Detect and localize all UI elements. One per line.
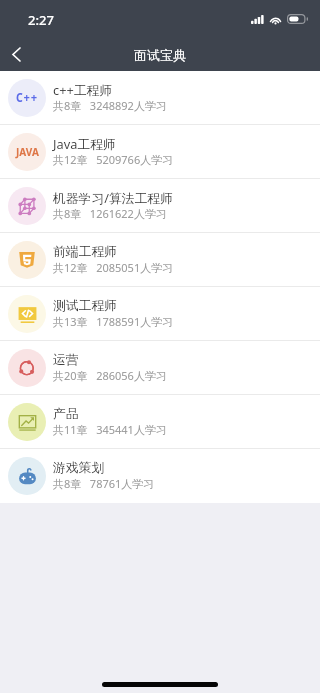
- staticText: 共13章 1788591人学习: [53, 314, 174, 329]
- staticText: 共12章 5209766人学习: [53, 152, 174, 167]
- button[interactable]: 前端工程师: [0, 233, 320, 287]
- staticText: 产品: [53, 406, 79, 422]
- staticText: 游戏策划: [53, 460, 105, 476]
- staticText: 机器学习/算法工程师: [53, 189, 173, 206]
- button[interactable]: 测试工程师: [0, 287, 320, 341]
- staticText: C++: [16, 90, 38, 106]
- staticText: 共8章 1261622人学习: [53, 206, 167, 221]
- button[interactable]: 运营: [0, 341, 320, 395]
- staticText: 运营: [53, 352, 79, 368]
- staticText: JAVA: [16, 145, 39, 159]
- staticText: 前端工程师: [53, 244, 117, 260]
- staticText: Java工程师: [53, 135, 116, 152]
- button[interactable]: 产品: [0, 395, 320, 449]
- staticText: 2:27: [28, 11, 54, 29]
- staticText: 共11章 345441人学习: [53, 422, 167, 437]
- button[interactable]: C++: [0, 71, 320, 125]
- button[interactable]: JAVA: [0, 125, 320, 179]
- staticText: c++工程师: [53, 81, 113, 98]
- staticText: 共12章 2085051人学习: [53, 260, 174, 275]
- staticText: 测试工程师: [53, 298, 117, 314]
- button[interactable]: 机器学习/算法工程师: [0, 179, 320, 233]
- staticText: 共8章 78761人学习: [53, 476, 155, 491]
- button[interactable]: Back: [0, 38, 32, 71]
- staticText: 面试宝典: [134, 47, 186, 63]
- staticText: 共8章 3248892人学习: [53, 98, 167, 113]
- staticText: 共20章 286056人学习: [53, 368, 167, 383]
- button[interactable]: 游戏策划: [0, 449, 320, 503]
